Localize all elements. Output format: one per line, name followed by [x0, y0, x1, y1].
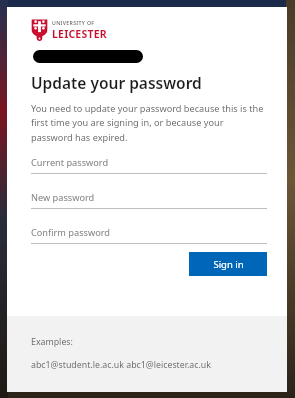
staticText: abc1@student.le.ac.uk abc1@leicester.ac.… [31, 359, 211, 371]
staticText: Examples: [31, 336, 73, 348]
button[interactable]: Current password [31, 156, 267, 174]
button[interactable]: New password [31, 191, 267, 209]
staticText: UNIVERSITY OF [52, 19, 95, 26]
staticText: Sign in [213, 258, 244, 271]
other: University of Leicester logo [31, 19, 48, 41]
staticText: New password [31, 191, 95, 204]
staticText: You need to update your password because… [31, 102, 267, 144]
staticText: Confirm password [31, 226, 110, 239]
button[interactable]: Confirm password [31, 226, 267, 244]
staticText: Current password [31, 156, 109, 169]
staticText: LEICESTER [52, 27, 107, 41]
button[interactable]: Sign in [189, 252, 267, 276]
staticText: Update your password [31, 72, 202, 93]
